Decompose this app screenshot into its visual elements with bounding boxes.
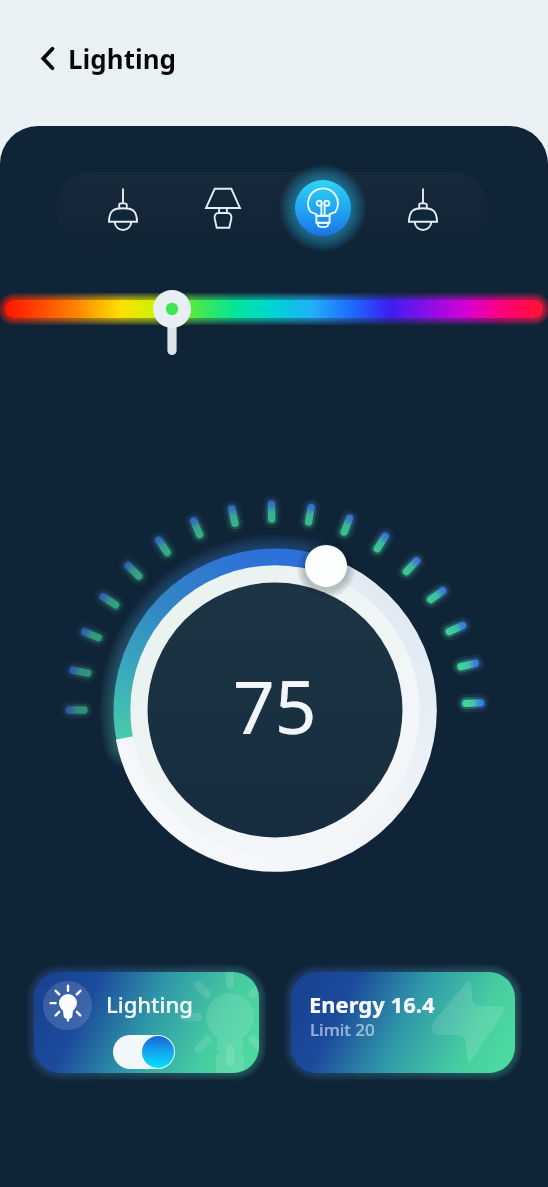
button[interactable]: Colour slider [0, 285, 548, 363]
button[interactable]: Table lamp [173, 172, 273, 244]
button[interactable]: Lighting [34, 972, 259, 1073]
button[interactable]: Light bulb [273, 172, 373, 244]
button[interactable]: Back [41, 41, 177, 76]
button[interactable]: Brightness 75 [0, 0, 548, 1187]
staticText: Limit 20 [310, 1018, 375, 1041]
staticText: Lighting [106, 989, 193, 1019]
staticText: Lighting [68, 41, 177, 76]
button[interactable]: Pendant light [73, 172, 173, 244]
button[interactable]: Energy 16.4 [291, 972, 515, 1073]
other: Back [41, 47, 55, 70]
staticText: Energy 16.4 [309, 989, 435, 1019]
button[interactable]: Lighting toggle [113, 1035, 175, 1069]
button[interactable]: Ceiling light [373, 172, 472, 244]
staticText: 75 [233, 656, 317, 755]
